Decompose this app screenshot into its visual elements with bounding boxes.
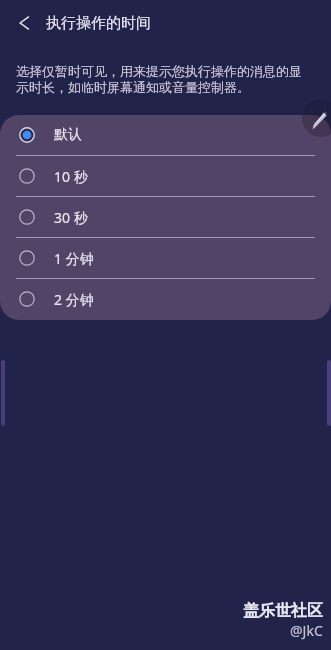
staticText: 选择仅暂时可见，用来提示您执行操作的消息的显示时长，如临时屏幕通知或音量控制器。 bbox=[16, 63, 314, 96]
staticText: 10 秒 bbox=[54, 167, 88, 186]
staticText: 默认 bbox=[54, 126, 82, 144]
button[interactable]: 2 分钟 bbox=[0, 279, 331, 319]
staticText: 执行操作的时间 bbox=[46, 14, 151, 33]
button[interactable]: 10 秒 bbox=[0, 156, 331, 196]
button[interactable]: 1 分钟 bbox=[0, 238, 331, 278]
button[interactable]: 30 秒 bbox=[0, 197, 331, 237]
button[interactable]: 默认 bbox=[0, 115, 331, 155]
staticText: 盖乐世社区 bbox=[243, 601, 323, 621]
staticText: 30 秒 bbox=[54, 208, 88, 227]
staticText: @JkC bbox=[290, 621, 323, 640]
staticText: 2 分钟 bbox=[54, 290, 94, 309]
other: Edit bbox=[308, 106, 331, 130]
staticText: 1 分钟 bbox=[54, 249, 94, 268]
button[interactable]: Back bbox=[0, 0, 46, 46]
